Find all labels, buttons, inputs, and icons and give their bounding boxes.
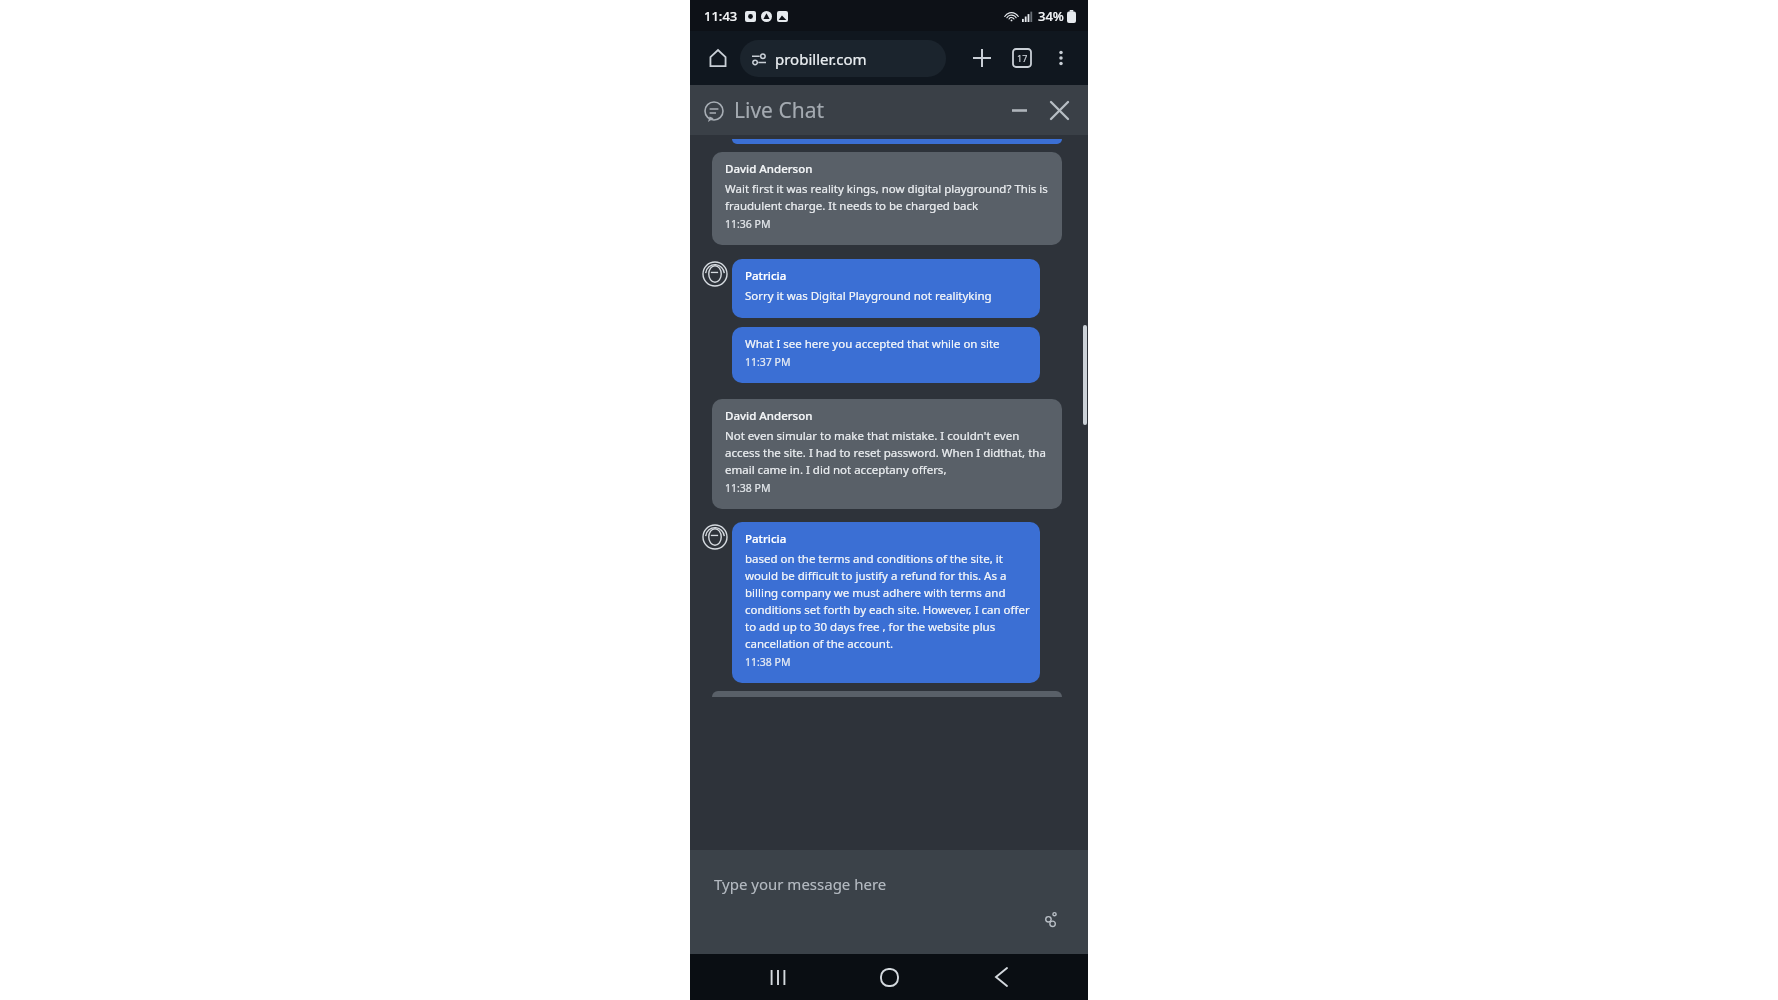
- staticText: Patricia: [745, 531, 787, 547]
- staticText: based on the terms and conditions of the…: [745, 551, 1030, 652]
- staticText: 11:37 PM: [745, 355, 791, 369]
- button[interactable]: Close: [1040, 91, 1078, 129]
- button[interactable]: New tab: [962, 38, 1002, 78]
- button[interactable]: Minimize: [1000, 91, 1038, 129]
- staticText: David Anderson: [725, 408, 813, 424]
- staticText: What I see here you accepted that while …: [745, 336, 1000, 352]
- button[interactable]: More options: [1042, 39, 1080, 77]
- staticText: 11:38 PM: [745, 655, 791, 669]
- button[interactable]: Tabs: [1002, 38, 1042, 78]
- staticText: Live Chat: [734, 96, 825, 125]
- staticText: 11:36 PM: [725, 217, 771, 231]
- staticText: Type your message here: [714, 874, 887, 894]
- staticText: Patricia: [745, 268, 787, 284]
- staticText: David Anderson: [725, 161, 813, 177]
- button[interactable]: Home: [865, 954, 913, 1000]
- button[interactable]: Attach: [1036, 904, 1066, 934]
- button[interactable]: probiller.com: [740, 40, 946, 77]
- button[interactable]: Patricia: [732, 259, 1040, 318]
- staticText: probiller.com: [775, 49, 867, 69]
- button[interactable]: What I see here you accepted that while …: [732, 327, 1040, 383]
- button[interactable]: David Anderson: [712, 399, 1062, 509]
- staticText: Sorry it was Digital Playground not real…: [745, 288, 992, 304]
- staticText: 11:43: [704, 7, 738, 25]
- staticText: 17: [1017, 52, 1028, 64]
- button[interactable]: Type your message here: [690, 850, 1088, 954]
- staticText: 11:38 PM: [725, 481, 771, 495]
- button[interactable]: Home: [700, 40, 736, 76]
- button[interactable]: Back: [977, 954, 1025, 1000]
- button[interactable]: Recent apps: [754, 954, 802, 1000]
- button[interactable]: Patricia: [732, 522, 1040, 683]
- staticText: 34%: [1038, 7, 1064, 25]
- staticText: Wait first it was reality kings, now dig…: [725, 181, 1052, 214]
- button[interactable]: David Anderson: [712, 152, 1062, 245]
- staticText: Not even simular to make that mistake. I…: [725, 428, 1052, 478]
